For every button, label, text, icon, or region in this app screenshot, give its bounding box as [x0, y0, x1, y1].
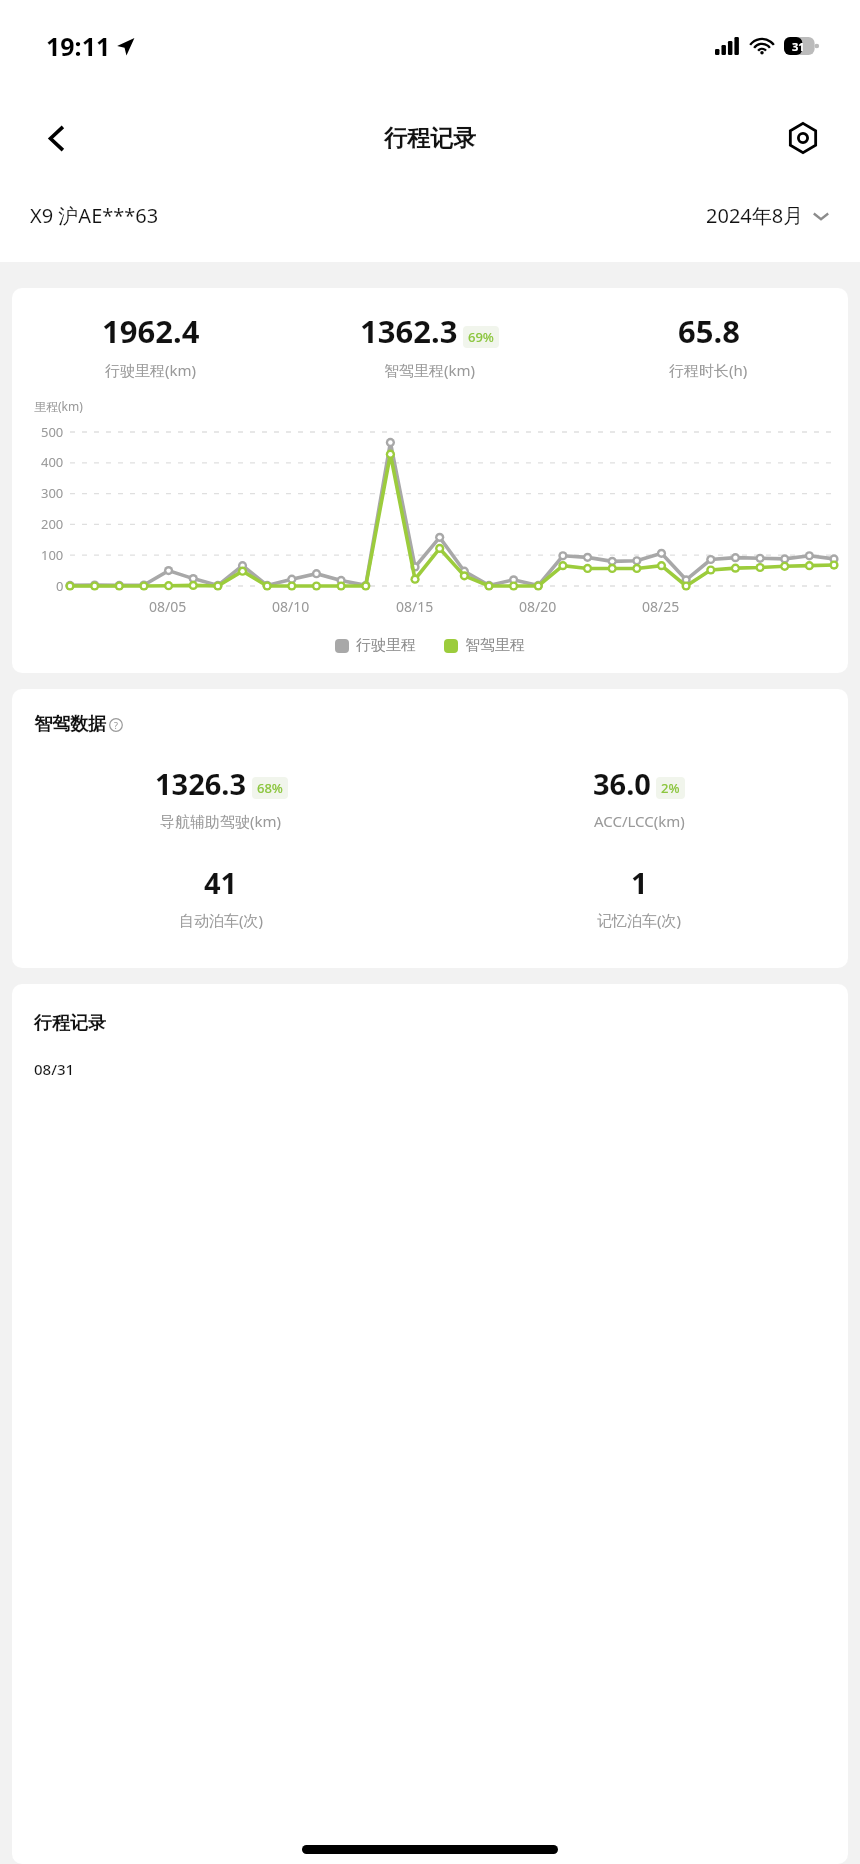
- button[interactable]: 智驾里程: [444, 636, 525, 655]
- staticText: 行程记录: [34, 1012, 106, 1035]
- other: 说明: [109, 718, 123, 732]
- staticText: 08/05: [149, 597, 187, 616]
- staticText: 记忆泊车(次): [597, 910, 682, 930]
- staticText: 300: [41, 484, 64, 502]
- button[interactable]: 1326.3: [12, 764, 430, 831]
- button[interactable]: 65.8: [569, 310, 848, 380]
- button[interactable]: 1962.4: [12, 310, 290, 380]
- staticText: ?: [114, 719, 118, 731]
- staticText: 41: [204, 863, 238, 902]
- button[interactable]: 行驶里程: [335, 636, 416, 655]
- staticText: 1362.3: [360, 310, 458, 352]
- button[interactable]: 1362.3: [290, 310, 569, 380]
- staticText: 36.0: [593, 764, 651, 803]
- button[interactable]: 36.0: [430, 764, 848, 831]
- staticText: 08/20: [519, 597, 557, 616]
- staticText: 08/25: [642, 597, 680, 616]
- staticText: 自动泊车(次): [179, 910, 264, 930]
- staticText: 智驾里程: [465, 636, 525, 655]
- staticText: 行程记录: [384, 124, 476, 153]
- staticText: 65.8: [678, 310, 740, 352]
- staticText: 行驶里程(km): [105, 360, 197, 380]
- staticText: 200: [41, 515, 64, 533]
- staticText: 行驶里程: [356, 636, 416, 655]
- staticText: 1326.3: [155, 764, 247, 803]
- staticText: 2%: [661, 779, 680, 797]
- button[interactable]: 2024年8月: [706, 202, 830, 229]
- staticText: 19:11: [46, 29, 111, 63]
- staticText: 68%: [257, 779, 283, 797]
- button[interactable]: 1: [430, 863, 848, 930]
- staticText: 1: [631, 863, 648, 902]
- staticText: 导航辅助驾驶(km): [160, 811, 282, 831]
- staticText: 31: [792, 39, 805, 54]
- button[interactable]: 设置: [776, 111, 830, 165]
- staticText: 08/10: [272, 597, 310, 616]
- staticText: 100: [41, 546, 64, 564]
- staticText: 2024年8月: [706, 202, 804, 229]
- staticText: 行程时长(h): [669, 360, 748, 380]
- staticText: 1962.4: [102, 310, 200, 352]
- staticText: ACC/LCC(km): [594, 811, 685, 831]
- staticText: 08/31: [34, 1059, 75, 1079]
- staticText: 08/15: [396, 597, 434, 616]
- button[interactable]: 智驾数据: [34, 713, 123, 736]
- staticText: 500: [41, 423, 64, 441]
- button[interactable]: 返回: [30, 111, 84, 165]
- staticText: X9 沪AE***63: [30, 202, 159, 229]
- staticText: 0: [56, 577, 64, 595]
- staticText: 69%: [468, 328, 494, 346]
- staticText: 里程(km): [34, 398, 83, 414]
- staticText: 智驾里程(km): [384, 360, 476, 380]
- staticText: 400: [41, 453, 64, 471]
- staticText: 智驾数据: [34, 713, 106, 736]
- button[interactable]: 41: [12, 863, 430, 930]
